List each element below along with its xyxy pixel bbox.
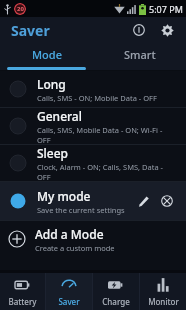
button[interactable]: General [0, 108, 186, 144]
staticText: Saver [58, 296, 80, 307]
staticText: My mode [37, 188, 91, 204]
button[interactable]: Smart [93, 43, 186, 66]
staticText: 20 [17, 5, 24, 13]
staticText: Sleep [37, 145, 69, 161]
staticText: Charge [102, 296, 130, 307]
staticText: Long [37, 76, 66, 92]
staticText: 5:07 PM [149, 3, 183, 15]
button[interactable]: Edit mode [132, 190, 154, 212]
staticText: Saver [11, 21, 50, 40]
staticText: Add a Mode [35, 226, 104, 242]
button[interactable]: Sleep [0, 145, 186, 181]
button[interactable]: Saver [46, 273, 92, 310]
staticText: Smart [124, 47, 156, 62]
button[interactable]: Info [128, 19, 150, 41]
button[interactable]: Delete mode [156, 190, 178, 212]
staticText: General [37, 108, 82, 124]
button[interactable]: Long [0, 71, 186, 107]
button[interactable]: Add a Mode [0, 221, 186, 257]
button[interactable]: Charge [93, 273, 139, 310]
button[interactable]: Settings [156, 19, 178, 41]
staticText: Calls, SMS - ON; Mobile Data - OFF [37, 93, 157, 103]
button[interactable]: Mode [0, 43, 93, 66]
button[interactable]: Battery [0, 273, 45, 310]
staticText: Monitor [148, 296, 179, 307]
staticText: Battery [8, 296, 37, 307]
button[interactable]: My mode [0, 182, 186, 220]
button[interactable]: Monitor [140, 273, 186, 310]
staticText: Create a custom mode [35, 243, 115, 253]
staticText: Clock, Alarm - ON; Calls, SMS, Data - OF… [37, 162, 176, 181]
staticText: Calls, SMS, Mobile Data - ON; Wi-Fi - OF… [37, 125, 176, 144]
staticText: Save the current settings [37, 205, 125, 215]
staticText: Mode [32, 47, 62, 62]
